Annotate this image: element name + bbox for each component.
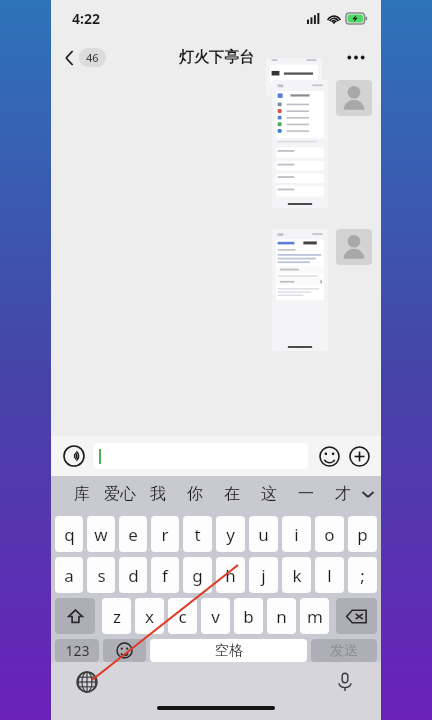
button[interactable]: 才	[324, 476, 361, 512]
button[interactable]: 在	[213, 476, 250, 512]
staticText: f	[162, 564, 168, 587]
staticText: 你	[187, 484, 203, 504]
button[interactable]: d	[119, 557, 147, 593]
staticText: v	[211, 605, 220, 628]
staticText: k	[292, 564, 302, 587]
staticText: r	[161, 523, 169, 546]
staticText: b	[243, 605, 254, 628]
staticText: 在	[224, 484, 240, 504]
staticText: z	[113, 605, 121, 628]
staticText: x	[145, 605, 154, 628]
button[interactable]: a	[55, 557, 83, 593]
staticText: a	[64, 564, 74, 587]
staticText: y	[226, 523, 235, 546]
button[interactable]: Shift	[55, 598, 95, 634]
staticText: w	[94, 523, 108, 546]
staticText: i	[294, 523, 299, 546]
staticText: 46	[86, 50, 99, 65]
button[interactable]: Voice input	[59, 441, 89, 471]
staticText: ;	[360, 564, 365, 587]
button[interactable]: c	[168, 598, 197, 634]
button[interactable]: 123	[55, 639, 99, 662]
button[interactable]: n	[267, 598, 296, 634]
button[interactable]: 我	[139, 476, 176, 512]
button[interactable]: m	[300, 598, 329, 634]
button[interactable]: 这	[250, 476, 287, 512]
staticText: g	[192, 564, 203, 587]
staticText: j	[261, 564, 266, 587]
staticText: p	[357, 523, 368, 546]
button[interactable]: s	[87, 557, 115, 593]
button[interactable]: v	[201, 598, 230, 634]
staticText: s	[97, 564, 106, 587]
button[interactable]: e	[119, 516, 147, 552]
button[interactable]: t	[183, 516, 212, 552]
button[interactable]: k	[282, 557, 311, 593]
button[interactable]: 爱心	[101, 476, 139, 512]
button[interactable]	[93, 443, 308, 469]
button[interactable]: Contact avatar	[336, 80, 372, 116]
button[interactable]: b	[234, 598, 263, 634]
staticText: 库	[74, 484, 90, 504]
staticText: q	[64, 523, 75, 546]
button[interactable]: 发送	[311, 639, 377, 662]
button[interactable]: Backspace	[336, 598, 377, 634]
button[interactable]: Emoji keyboard	[103, 639, 146, 662]
button[interactable]: g	[183, 557, 212, 593]
button[interactable]: 空格	[150, 639, 307, 662]
button[interactable]: Screenshot image	[272, 80, 328, 208]
staticText: h	[225, 564, 236, 587]
staticText: d	[128, 564, 139, 587]
staticText: 我	[150, 484, 166, 504]
staticText: 123	[65, 641, 90, 660]
button[interactable]: More actions	[345, 442, 373, 470]
staticText: 才	[335, 484, 351, 504]
button[interactable]: Expand candidates	[361, 476, 375, 512]
button[interactable]: 你	[176, 476, 213, 512]
button[interactable]: Back, 46 unread	[61, 44, 110, 71]
button[interactable]: Emoji	[315, 442, 343, 470]
button[interactable]: h	[216, 557, 245, 593]
staticText: 爱心	[104, 484, 136, 504]
button[interactable]: i	[282, 516, 311, 552]
staticText: l	[327, 564, 332, 587]
staticText: m	[307, 605, 323, 628]
staticText: 4:22	[72, 9, 100, 28]
button[interactable]: l	[315, 557, 344, 593]
button[interactable]: o	[315, 516, 344, 552]
staticText: 一	[298, 484, 314, 504]
button[interactable]: z	[102, 598, 131, 634]
staticText: 这	[261, 484, 277, 504]
button[interactable]: 一	[287, 476, 324, 512]
staticText: 空格	[215, 642, 243, 660]
button[interactable]: f	[151, 557, 179, 593]
button[interactable]: Screenshot image	[272, 229, 328, 351]
button[interactable]: q	[55, 516, 83, 552]
button[interactable]: p	[348, 516, 377, 552]
button[interactable]: Voice dictation	[331, 668, 359, 696]
button[interactable]: Contact avatar	[336, 229, 372, 265]
staticText: 灯火下亭台	[179, 48, 254, 67]
button[interactable]: r	[151, 516, 179, 552]
staticText: c	[178, 605, 187, 628]
staticText: u	[258, 523, 269, 546]
staticText: n	[276, 605, 287, 628]
staticText: 发送	[330, 642, 358, 660]
button[interactable]: More options	[341, 49, 371, 66]
staticText: t	[194, 523, 201, 546]
staticText: o	[324, 523, 335, 546]
button[interactable]: Switch language	[73, 668, 101, 696]
button[interactable]: x	[135, 598, 164, 634]
button[interactable]: j	[249, 557, 278, 593]
button[interactable]: w	[87, 516, 115, 552]
button[interactable]: u	[249, 516, 278, 552]
button[interactable]: y	[216, 516, 245, 552]
staticText: e	[128, 523, 138, 546]
button[interactable]: ;	[348, 557, 377, 593]
button[interactable]: 库	[63, 476, 101, 512]
